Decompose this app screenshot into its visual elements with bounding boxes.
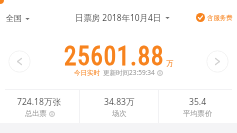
button[interactable]: Previous day: [8, 50, 31, 73]
staticText: 今日实时: [74, 69, 100, 77]
staticText: 25601.88: [64, 42, 165, 71]
button[interactable]: Next day: [206, 50, 229, 73]
staticText: 35.4: [189, 96, 207, 108]
staticText: 日票房 2018年10月4日: [75, 12, 162, 23]
staticText: 含服务费: [207, 14, 233, 22]
button[interactable]: 724.18万张: [0, 90, 79, 123]
button[interactable]: 日票房 2018年10月4日: [75, 12, 170, 23]
staticText: 724.18万张: [17, 96, 62, 108]
button[interactable]: 含服务费: [196, 13, 233, 22]
staticText: 更新时间23:59:34: [103, 68, 155, 77]
staticText: 万: [166, 59, 174, 68]
button[interactable]: 全国: [6, 13, 30, 23]
button[interactable]: 34.83万: [80, 90, 158, 123]
staticText: 全国: [6, 13, 22, 23]
button[interactable]: 35.4: [159, 90, 237, 123]
staticText: 34.83万: [104, 96, 135, 108]
staticText: 总出票: [25, 109, 47, 118]
staticText: 平均票价: [183, 109, 213, 118]
staticText: 场次: [112, 109, 127, 118]
